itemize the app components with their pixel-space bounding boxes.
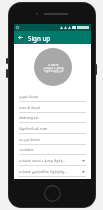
button[interactable]: Add photo [34,48,72,86]
staticText: Sign up [28,34,51,42]
staticText: பதிவேற்றவும் [44,69,64,72]
staticText: கடைசி பெயர் [19,105,41,110]
staticText: பாலினம் [19,148,34,152]
staticText: தொலைபேசி எண் [19,126,48,131]
button[interactable]: கடைசி பெயர் [19,102,86,113]
button[interactable]: உங்கள் துறையினை தேர்ந்தெ... [19,166,86,177]
staticText: உங்கள் துறையினை தேர்ந்தெ... [19,169,68,174]
staticText: கடவுச் சொல் [19,137,40,142]
button[interactable]: கடவுச் சொல் [19,134,86,145]
staticText: மின்னஞ்சல் [19,116,39,120]
button[interactable]: முதல் பெயர் [19,91,86,102]
staticText: உங்கள் [48,63,59,66]
staticText: உங்கள் மாவட்டத்தை தேர்ந்... [19,158,66,163]
button[interactable]: தொலைபேசி எண் [19,123,86,134]
button[interactable]: மின்னஞ்சல் [19,113,86,123]
staticText: முதல் பெயர் [19,94,39,99]
button[interactable]: Back [16,33,25,42]
staticText: புகைப்படத்தை [43,66,64,69]
button[interactable]: பாலினம் [19,145,86,155]
button[interactable]: உங்கள் மாவட்டத்தை தேர்ந்... [19,155,86,166]
